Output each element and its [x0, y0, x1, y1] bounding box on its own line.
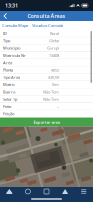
staticText: Setor Tp — [3, 96, 17, 102]
staticText: ID — [3, 31, 7, 36]
staticText: Matric — [3, 82, 15, 87]
button[interactable]: Exportar area — [0, 118, 93, 127]
staticText: Não Tem — [43, 96, 59, 102]
button[interactable]: Measure — [56, 187, 74, 196]
staticText: Consulta Mapa — [2, 23, 28, 28]
staticText: Não Tem — [43, 89, 59, 94]
staticText: Municipio — [3, 45, 20, 51]
staticText: 4892 — [51, 67, 59, 73]
button[interactable]: Locate — [19, 187, 37, 196]
staticText: Gurupi — [47, 45, 59, 51]
button[interactable]: Back — [0, 11, 11, 21]
staticText: Sim — [52, 82, 59, 87]
staticText: -- — [57, 104, 59, 109]
staticText: Tipo Area — [3, 75, 20, 80]
staticText: Feição — [3, 111, 14, 116]
staticText: Planta — [3, 67, 13, 73]
button[interactable]: Layers — [0, 187, 19, 196]
staticText: Gleba — [49, 38, 59, 43]
staticText: Matricula Nr — [3, 53, 26, 58]
staticText: Consulta Áreas — [27, 12, 65, 20]
button[interactable]: Consulta Mapa — [2, 22, 28, 29]
staticText: 430,00 — [48, 75, 59, 80]
staticText: Tipo — [3, 38, 10, 43]
staticText: Bairro — [3, 89, 15, 94]
staticText: 13:31 — [5, 2, 18, 9]
button[interactable]: Visualiza Camada — [32, 22, 63, 29]
staticText: Rural — [50, 31, 59, 36]
button[interactable]: More — [74, 187, 93, 196]
staticText: Exportar area — [33, 119, 59, 125]
staticText: Visualiza Camada — [32, 23, 63, 28]
staticText: 13408 — [49, 53, 59, 58]
staticText: Area — [3, 60, 12, 65]
staticText: Feito — [3, 104, 11, 109]
button[interactable]: Select — [37, 187, 56, 196]
